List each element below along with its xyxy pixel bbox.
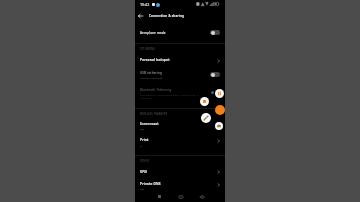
staticText: Off (140, 187, 144, 190)
staticText: Print (140, 138, 149, 142)
staticText: OTHER (140, 159, 149, 162)
button[interactable]: Draw (201, 113, 211, 123)
button[interactable]: Back (134, 9, 147, 22)
button[interactable]: Toggle (210, 72, 220, 77)
staticText: Personal hotspot (140, 58, 170, 62)
staticText: VPN (140, 170, 148, 174)
staticText: USB tethering (140, 71, 162, 75)
staticText: Private DNS (140, 182, 161, 186)
button[interactable] (135, 25, 225, 40)
button[interactable]: Pause (215, 89, 224, 98)
button[interactable] (135, 136, 225, 151)
button[interactable] (135, 85, 225, 102)
staticText: This feature is not available when 'Hots… (140, 93, 201, 100)
button[interactable]: Home (173, 189, 188, 202)
button[interactable] (135, 167, 225, 179)
staticText: 0 (140, 144, 142, 147)
staticText: Bluetooth Tethering (140, 88, 172, 92)
staticText: Off (140, 127, 144, 130)
button[interactable]: Back (194, 189, 209, 202)
staticText: Aeroplane mode (140, 31, 166, 35)
button[interactable] (135, 55, 225, 67)
button[interactable]: Recents (152, 189, 167, 202)
button[interactable] (135, 69, 225, 83)
staticText: WIRELESS TRANSFER (140, 112, 168, 115)
button[interactable]: Stop (200, 97, 209, 106)
button[interactable]: Record (215, 105, 225, 115)
staticText: 15:42 (140, 2, 150, 7)
button[interactable] (135, 180, 225, 195)
staticText: TETHERING (140, 47, 156, 50)
staticText: Screencast (140, 122, 159, 126)
staticText: USB not connected (140, 76, 163, 79)
button[interactable]: Toggle (210, 30, 220, 35)
button[interactable] (135, 119, 225, 134)
button[interactable]: Screenshot (215, 122, 223, 130)
staticText: Connection & sharing (149, 14, 185, 18)
